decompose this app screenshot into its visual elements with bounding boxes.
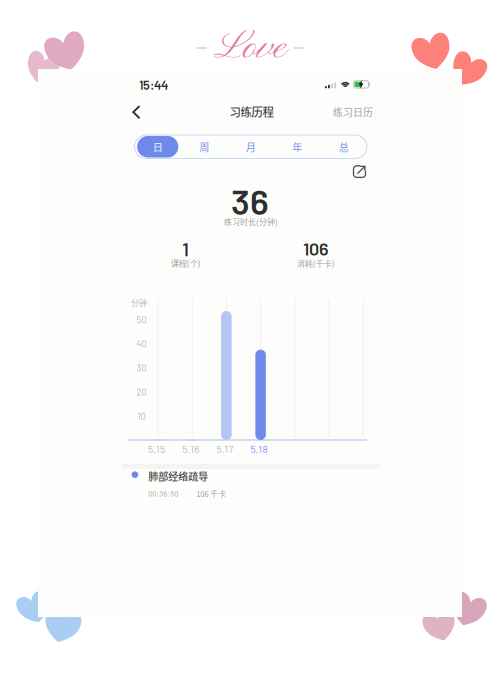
staticText: 周 (199, 139, 209, 154)
staticText: 肺部经络疏导 (148, 469, 208, 483)
staticText: 10 (137, 410, 145, 421)
staticText: 30 (136, 362, 146, 373)
staticText: 月 (246, 139, 256, 154)
staticText: 36 (231, 179, 269, 222)
staticText: 消耗(千卡) (297, 257, 335, 269)
button[interactable]: 月 (227, 135, 274, 158)
staticText: 年 (292, 139, 302, 154)
staticText: Love (213, 23, 286, 73)
staticText: 分钟 (131, 297, 147, 308)
button[interactable]: Back (122, 95, 150, 129)
button[interactable]: 练习日历 (324, 98, 382, 126)
button[interactable]: 总 (320, 135, 367, 158)
staticText: 20 (136, 386, 146, 397)
staticText: 15:44 (139, 77, 168, 92)
staticText: 5.17 (216, 443, 233, 455)
button[interactable]: 周 (181, 135, 227, 158)
button[interactable]: 年 (274, 135, 320, 158)
staticText: 5.18 (251, 443, 268, 455)
staticText: 练习时长(分钟) (224, 216, 278, 227)
staticText: 课程(个) (171, 257, 201, 269)
button[interactable]: 日 (134, 135, 181, 158)
staticText: 练习日历 (333, 105, 373, 119)
staticText: 40 (136, 338, 146, 349)
staticText: 50 (136, 314, 146, 325)
button[interactable]: 肺部经络疏导 (38, 463, 462, 507)
staticText: 5.16 (182, 443, 199, 455)
staticText: 1 (182, 237, 189, 260)
staticText: 106 (303, 237, 329, 259)
staticText: 习练历程 (229, 103, 273, 120)
staticText: 5.15 (148, 443, 165, 455)
staticText: 日 (153, 139, 163, 154)
button[interactable]: Share (348, 161, 370, 182)
staticText: 106 千卡 (196, 488, 226, 499)
staticText: 00:36:50 (148, 489, 178, 498)
staticText: 总 (339, 139, 349, 154)
